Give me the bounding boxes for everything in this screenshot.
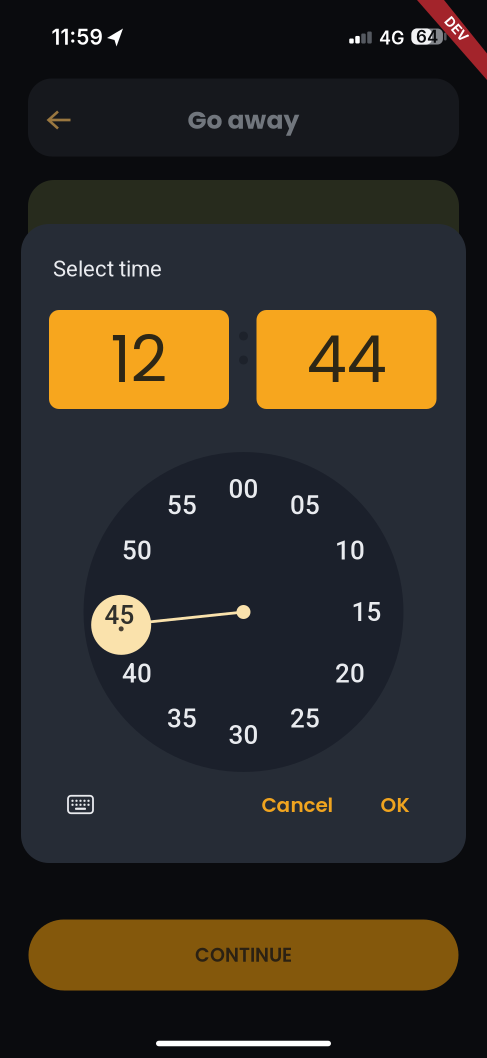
staticText: Go away xyxy=(187,102,299,137)
button[interactable]: 44 xyxy=(256,310,436,409)
staticText: 12 xyxy=(110,315,167,404)
staticText: 35 xyxy=(167,703,197,734)
staticText: 44 xyxy=(306,315,386,404)
staticText: Cancel xyxy=(261,791,333,819)
staticText: 05 xyxy=(290,490,320,521)
button[interactable] xyxy=(58,782,102,826)
staticText: 20 xyxy=(335,658,365,689)
button[interactable]: OK xyxy=(365,783,425,827)
staticText: CONTINUE xyxy=(195,942,292,968)
button[interactable] xyxy=(37,98,81,142)
staticText: 50 xyxy=(122,535,152,566)
staticText: 45 xyxy=(104,600,134,630)
staticText: 30 xyxy=(228,720,258,750)
staticText: 15 xyxy=(351,597,381,627)
staticText: 11:59 xyxy=(51,24,102,50)
staticText: 10 xyxy=(335,535,365,566)
staticText: 00 xyxy=(228,474,258,504)
button[interactable]: Cancel xyxy=(247,783,347,827)
staticText: OK xyxy=(380,791,409,819)
button[interactable]: 12 xyxy=(49,310,229,409)
staticText: 55 xyxy=(167,490,197,521)
staticText: Select time xyxy=(53,256,162,282)
button[interactable]: CONTINUE xyxy=(28,919,458,990)
staticText: 25 xyxy=(290,703,320,734)
staticText: 64 xyxy=(416,26,438,47)
staticText: DEV xyxy=(442,21,470,37)
staticText: 40 xyxy=(122,658,152,689)
staticText: 4G xyxy=(379,27,404,49)
